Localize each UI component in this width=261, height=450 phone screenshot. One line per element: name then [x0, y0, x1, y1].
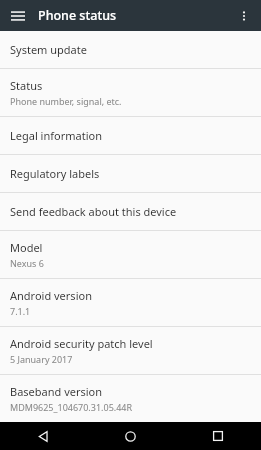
- staticText: Android security patch level: [10, 336, 153, 351]
- staticText: Legal information: [10, 128, 102, 143]
- staticText: Send feedback about this device: [10, 204, 177, 219]
- button[interactable]: Back: [0, 422, 87, 450]
- button[interactable]: Status: [0, 69, 261, 116]
- button[interactable]: Open navigation menu: [4, 2, 32, 30]
- staticText: Regulatory labels: [10, 166, 100, 181]
- button[interactable]: System update: [0, 31, 261, 68]
- button[interactable]: Legal information: [0, 117, 261, 154]
- staticText: MDM9625_104670.31.05.44R: [10, 401, 133, 413]
- button[interactable]: More options: [230, 2, 258, 30]
- button[interactable]: Baseband version: [0, 375, 261, 422]
- staticText: Android version: [10, 288, 92, 303]
- staticText: Baseband version: [10, 384, 103, 399]
- button[interactable]: Regulatory labels: [0, 155, 261, 192]
- button[interactable]: Home: [87, 422, 174, 450]
- staticText: 5 January 2017: [10, 353, 73, 365]
- staticText: Phone status: [38, 7, 117, 24]
- staticText: System update: [10, 42, 87, 57]
- button[interactable]: Android version: [0, 279, 261, 326]
- staticText: Status: [10, 78, 43, 93]
- staticText: Model: [10, 240, 43, 255]
- button[interactable]: Android security patch level: [0, 327, 261, 374]
- staticText: Nexus 6: [10, 257, 44, 269]
- staticText: 7.1.1: [10, 305, 31, 317]
- button[interactable]: Model: [0, 231, 261, 278]
- button[interactable]: Send feedback about this device: [0, 193, 261, 230]
- button[interactable]: Recent apps: [174, 422, 261, 450]
- staticText: Phone number, signal, etc.: [10, 95, 122, 107]
